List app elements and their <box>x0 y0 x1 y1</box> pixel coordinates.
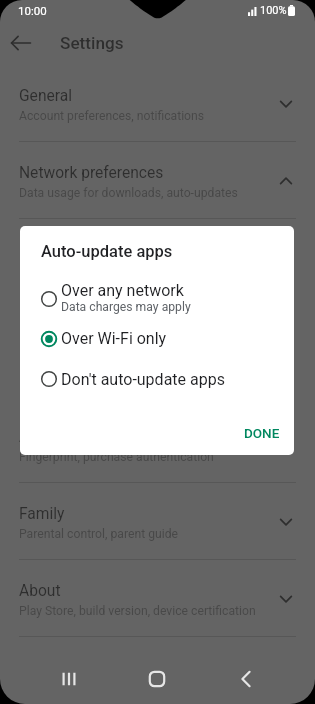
button[interactable]: About <box>0 560 315 637</box>
staticText: Parental control, parent guide <box>19 527 179 541</box>
staticText: Data charges may apply <box>61 300 191 314</box>
button[interactable]: Don't auto-update apps <box>20 359 294 399</box>
button[interactable]: Home <box>139 661 175 697</box>
staticText: Fingerprint, purchase authentication <box>19 450 214 464</box>
staticText: Over any network <box>61 281 184 300</box>
staticText: General <box>19 87 73 105</box>
button[interactable]: Recent apps <box>51 661 87 697</box>
staticText: DONE <box>244 425 280 441</box>
staticText: Settings <box>60 33 124 53</box>
button[interactable]: Family <box>0 483 315 560</box>
button[interactable]: Over any network <box>20 279 294 319</box>
button[interactable]: Over Wi-Fi only <box>20 319 294 359</box>
button[interactable]: DONE <box>235 418 289 448</box>
staticText: About <box>19 582 61 600</box>
staticText: Play Store, build version, device certif… <box>19 604 256 618</box>
staticText: 10:00 <box>18 4 47 17</box>
staticText: Auto-update apps <box>41 242 173 261</box>
button[interactable]: Navigate up <box>9 31 33 55</box>
button[interactable]: General <box>0 65 315 142</box>
staticText: Network preferences <box>19 164 164 182</box>
button[interactable]: Network preferences <box>0 142 315 219</box>
button[interactable]: Authentication <box>0 406 315 483</box>
staticText: Data usage for downloads, auto-updates <box>19 186 238 200</box>
staticText: Account preferences, notifications <box>19 109 205 123</box>
staticText: Don't auto-update apps <box>61 370 225 389</box>
staticText: Over Wi-Fi only <box>61 329 167 348</box>
button[interactable]: Back <box>228 661 264 697</box>
staticText: Authentication <box>19 428 121 446</box>
staticText: 100% <box>260 4 287 17</box>
staticText: Family <box>19 505 65 523</box>
